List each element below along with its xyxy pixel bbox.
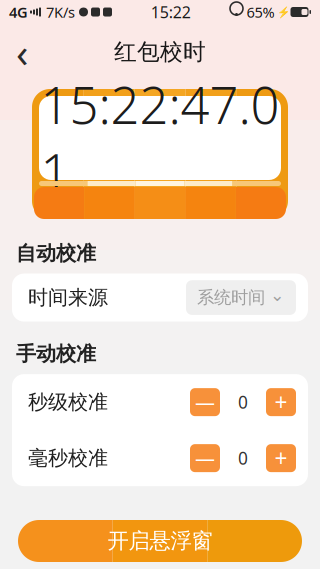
staticText: 秒级校准 (28, 390, 108, 414)
staticText: 时间来源 (28, 285, 108, 310)
staticText: 自动校准 (16, 241, 96, 266)
staticText: 毫秒校准 (28, 446, 108, 470)
staticText: + (274, 443, 287, 473)
staticText: 15:22:47.01 (40, 71, 279, 205)
staticText: 4G (9, 2, 28, 22)
staticText: + (274, 387, 287, 417)
button[interactable]: 返回 (0, 30, 44, 74)
button[interactable]: 减少秒级校准 (190, 388, 220, 416)
staticText: 开启悬浮窗 (107, 528, 212, 554)
staticText: 0 (238, 447, 248, 470)
button[interactable]: 减少毫秒校准 (190, 444, 220, 472)
staticText: ‹ (16, 25, 28, 78)
staticText: ⚡ (276, 6, 289, 18)
button[interactable]: 增加毫秒校准 (266, 444, 296, 472)
staticText: — (195, 445, 215, 471)
staticText: — (195, 389, 215, 415)
staticText: 65% (246, 2, 274, 22)
staticText: 红包校时 (114, 38, 206, 66)
staticText: 手动校准 (16, 342, 96, 366)
staticText: 7K/s (46, 2, 75, 22)
staticText: 15:22 (151, 1, 191, 23)
button[interactable]: 开启悬浮窗 (18, 520, 302, 562)
staticText: 系统时间 (197, 287, 265, 308)
staticText: 0 (238, 391, 248, 414)
button[interactable]: 时间来源 (12, 274, 308, 322)
button[interactable]: 增加秒级校准 (266, 388, 296, 416)
staticText: ⌄ (270, 285, 285, 305)
